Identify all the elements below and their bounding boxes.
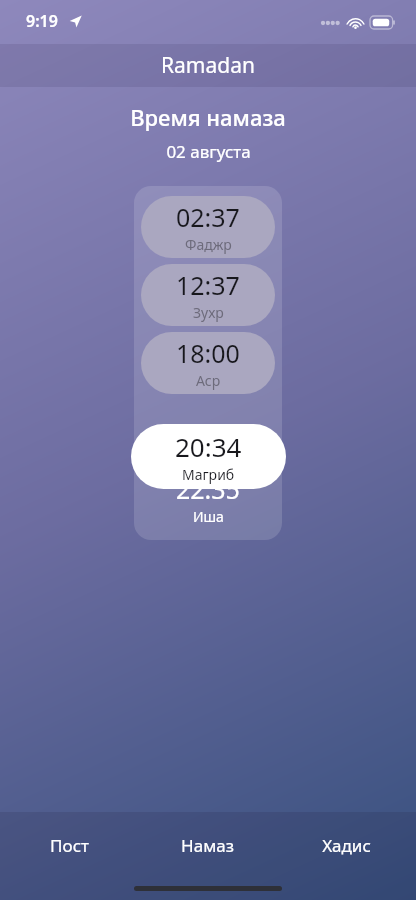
button[interactable]: 12:37	[141, 264, 275, 326]
button[interactable]: Хадис	[277, 828, 416, 862]
staticText: 9:19	[26, 10, 58, 32]
button[interactable]: 20:34	[131, 424, 286, 489]
staticText: Намаз	[181, 834, 234, 857]
staticText: Ramadan	[161, 51, 255, 80]
staticText: Аср	[196, 371, 221, 390]
button[interactable]: 02:37	[141, 196, 275, 258]
staticText: Фаджр	[185, 235, 232, 254]
staticText: 12:37	[176, 268, 240, 302]
button[interactable]: Намаз	[138, 828, 277, 862]
staticText: 22:35	[176, 472, 240, 506]
staticText: Пост	[50, 834, 89, 857]
staticText: Иша	[193, 507, 224, 526]
button[interactable]: Пост	[0, 828, 138, 862]
button[interactable]: 22:35	[134, 468, 282, 530]
staticText: 20:34	[175, 429, 242, 464]
staticText: 02:37	[176, 200, 240, 234]
staticText: Хадис	[322, 834, 371, 857]
staticText: Зухр	[193, 303, 224, 322]
staticText: 02 августа	[166, 140, 251, 163]
button[interactable]: 18:00	[141, 332, 275, 394]
staticText: Магриб	[182, 465, 235, 484]
staticText: Время намаза	[130, 102, 286, 132]
staticText: 18:00	[176, 336, 240, 370]
